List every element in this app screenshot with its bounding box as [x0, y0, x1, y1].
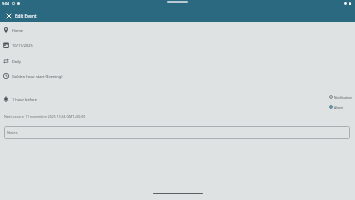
button[interactable]: 1 hour before: [0, 92, 355, 106]
staticText: Home: [12, 28, 24, 33]
button[interactable]: Home: [0, 23, 355, 37]
staticText: Notes: [7, 130, 18, 135]
staticText: Daily: [12, 59, 22, 64]
button[interactable]: Daily: [0, 54, 355, 68]
button[interactable]: Golden hour start (Evening): [0, 69, 355, 83]
button[interactable]: Close: [0, 9, 17, 22]
staticText: Alarm: [334, 105, 344, 109]
staticText: Notification: [334, 95, 353, 99]
button[interactable]: Notes: [4, 126, 350, 139]
staticText: 9:04: [2, 1, 10, 6]
button[interactable]: Notification: [329, 92, 355, 101]
staticText: 10/11/2025: [12, 43, 33, 48]
staticText: Edit Event: [15, 13, 37, 19]
button[interactable]: 10/11/2025: [0, 38, 355, 52]
staticText: 1 hour before: [12, 97, 38, 102]
staticText: Golden hour start (Evening): [12, 74, 63, 79]
staticText: Next occurs: 11 novembre 2025 15:34 GMT+…: [4, 114, 86, 119]
button[interactable]: Alarm: [329, 102, 355, 111]
